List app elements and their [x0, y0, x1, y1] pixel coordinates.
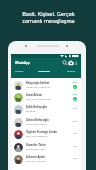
staticText: Şefik Birkiyoğlu	[26, 105, 48, 109]
staticText: Bekçioğlu-Sohbet	[26, 81, 50, 85]
staticText: Dylan: Erek, sanırım ço	[26, 86, 51, 89]
staticText: 11:00	[72, 81, 78, 84]
button[interactable]: Öğüten Yemeğçi Grubu	[11, 128, 81, 140]
staticText: Şu an doğru yolda	[26, 123, 46, 126]
staticText: Sen: Yarın yapıyoruz	[26, 135, 48, 138]
staticText: 10:56	[72, 107, 78, 110]
button[interactable]: Search	[62, 60, 68, 66]
staticText: 10:35	[72, 120, 78, 123]
staticText: Öğüten Yemeğçi Grubu	[26, 130, 58, 134]
staticText: WhatsApp	[15, 61, 30, 65]
button[interactable]: KAMERA	[11, 68, 28, 78]
staticText: Merhaba, nasılsın?	[26, 160, 47, 163]
staticText: 11:00	[72, 93, 78, 96]
button[interactable]: Bekçioğlu-Sohbet	[11, 79, 81, 91]
button[interactable]: DURUM	[60, 68, 81, 78]
button[interactable]: SOHBETLER	[28, 68, 60, 78]
staticText: Dün	[73, 157, 77, 160]
staticText: Dün	[73, 145, 77, 148]
staticText: Şebnem Aydın	[26, 155, 46, 159]
staticText: KAMERA	[15, 70, 24, 73]
staticText: SOHBETLER	[38, 70, 50, 73]
button[interactable]: Şefik Birkiyoğlu	[11, 103, 81, 115]
staticText: zamanlı mesajlaşma	[22, 17, 75, 24]
button[interactable]: More options	[74, 61, 79, 66]
button[interactable]: Zühan Birkiyoğlu	[11, 116, 81, 128]
staticText: Bir İletisi	[26, 110, 36, 113]
button[interactable]: Camera	[68, 60, 74, 66]
staticText: Basit. Kişisel. Gerçek	[22, 10, 75, 17]
staticText: Bu harika bir fikir!	[26, 148, 46, 151]
button[interactable]: Şebnem Aydın	[11, 153, 81, 165]
staticText: 3	[74, 98, 76, 101]
staticText: Ergi: Harika, neyse ken	[26, 98, 51, 101]
staticText: Dün	[73, 132, 77, 135]
button[interactable]: Kuzenler Tekin	[11, 141, 81, 153]
button[interactable]: Sezai Arkasi	[11, 91, 81, 103]
staticText: Sezai Arkasi	[26, 93, 42, 97]
staticText: 2	[74, 86, 76, 89]
staticText: DURUM	[67, 70, 75, 73]
staticText: Kuzenler Tekin	[26, 143, 46, 147]
staticText: Zühan Birkiyoğlu	[26, 118, 49, 122]
